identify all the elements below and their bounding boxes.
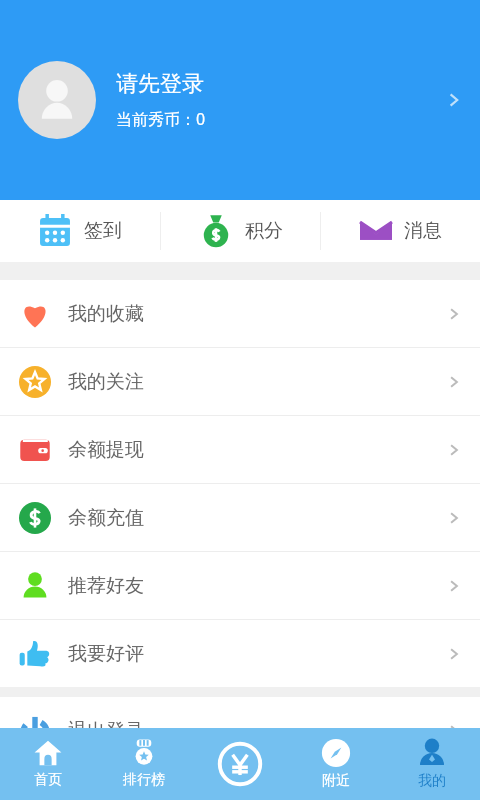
staticText: 消息 — [404, 219, 442, 243]
button[interactable]: 余额提现 — [0, 416, 480, 484]
staticText: 我要好评 — [68, 642, 144, 666]
button[interactable]: 余额充值 — [0, 484, 480, 552]
staticText: 当前秀币：0 — [116, 108, 206, 130]
button[interactable]: 附近 — [288, 728, 384, 800]
staticText: 我的 — [418, 772, 446, 790]
button[interactable]: 我的收藏 — [0, 280, 480, 348]
button[interactable]: 首页 — [0, 728, 96, 800]
staticText: 我的关注 — [68, 370, 144, 394]
button[interactable]: 我的关注 — [0, 348, 480, 416]
other: Login — [444, 90, 464, 110]
button[interactable]: 推荐好友 — [0, 552, 480, 620]
staticText: 推荐好友 — [68, 574, 144, 598]
button[interactable]: 请先登录 — [0, 0, 480, 200]
button[interactable]: 退出登录 — [0, 697, 480, 764]
staticText: 请先登录 — [116, 70, 204, 98]
staticText: 排行榜 — [123, 771, 165, 789]
button[interactable]: 我要好评 — [0, 620, 480, 687]
staticText: 我的收藏 — [68, 302, 144, 326]
staticText: 余额充值 — [68, 506, 144, 530]
button[interactable]: 排行榜 — [96, 728, 192, 800]
button[interactable]: 消息 — [321, 200, 480, 262]
staticText: 附近 — [322, 772, 350, 790]
staticText: 签到 — [84, 219, 122, 243]
staticText: 余额提现 — [68, 438, 144, 462]
staticText: 首页 — [34, 771, 62, 789]
button[interactable]: 我的 — [384, 728, 480, 800]
button[interactable]: 积分 — [161, 200, 320, 262]
button[interactable]: 充值 — [192, 728, 288, 800]
staticText: 退出登录 — [68, 719, 144, 743]
button[interactable]: 签到 — [0, 200, 160, 262]
staticText: 积分 — [245, 219, 283, 243]
